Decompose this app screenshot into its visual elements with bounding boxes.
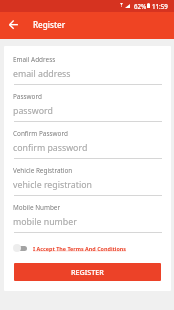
- staticText: confirm password: [13, 142, 88, 154]
- staticText: email address: [13, 68, 71, 80]
- staticText: Password: [13, 92, 42, 101]
- button[interactable]: Back: [5, 16, 21, 32]
- staticText: Register: [33, 19, 66, 30]
- staticText: Confirm Password: [13, 129, 68, 138]
- staticText: 62%: [134, 2, 147, 10]
- staticText: password: [13, 105, 53, 117]
- staticText: Vehicle Registration: [13, 166, 73, 175]
- staticText: 11:59: [152, 2, 168, 10]
- staticText: mobile number: [13, 216, 77, 228]
- staticText: Email Address: [13, 55, 56, 64]
- staticText: vehicle registration: [13, 179, 92, 191]
- button[interactable]: I Accept The Terms And Conditions: [13, 241, 127, 255]
- staticText: I Accept The Terms And Conditions: [33, 245, 127, 252]
- staticText: Mobile Number: [13, 203, 61, 212]
- staticText: REGISTER: [71, 267, 104, 277]
- button[interactable]: REGISTER: [14, 263, 161, 281]
